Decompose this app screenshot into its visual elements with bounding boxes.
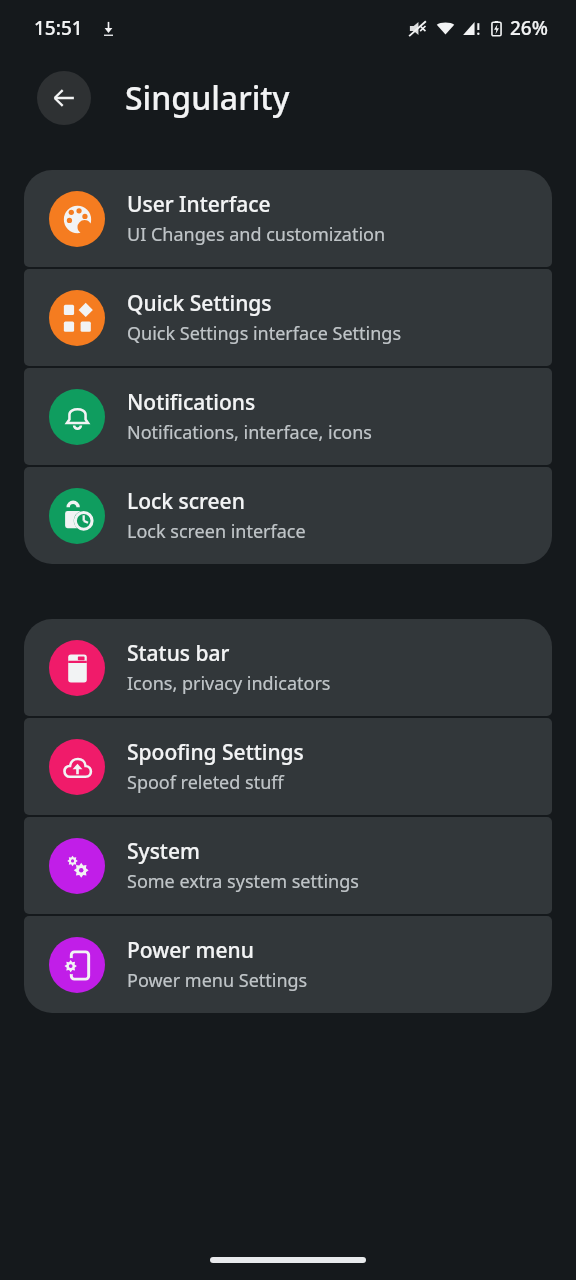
staticText: Notifications, interface, icons bbox=[127, 420, 372, 445]
staticText: Power menu bbox=[127, 936, 254, 965]
staticText: Quick Settings bbox=[127, 289, 272, 318]
button[interactable]: Lock screen bbox=[24, 467, 552, 564]
button[interactable]: Spoofing Settings bbox=[24, 718, 552, 815]
staticText: System bbox=[127, 837, 200, 866]
staticText: Singularity bbox=[125, 76, 290, 120]
staticText: Spoofing Settings bbox=[127, 738, 304, 767]
staticText: User Interface bbox=[127, 190, 271, 219]
staticText: UI Changes and customization bbox=[127, 222, 386, 247]
button[interactable]: Power menu bbox=[24, 916, 552, 1013]
button[interactable]: User Interface bbox=[24, 170, 552, 267]
staticText: Notifications bbox=[127, 388, 256, 417]
staticText: Quick Settings interface Settings bbox=[127, 321, 402, 346]
staticText: 26% bbox=[510, 15, 548, 41]
staticText: Icons, privacy indicators bbox=[127, 671, 331, 696]
staticText: Lock screen bbox=[127, 487, 245, 516]
staticText: Some extra system settings bbox=[127, 869, 359, 894]
staticText: Spoof releted stuff bbox=[127, 770, 284, 795]
staticText: 15:51 bbox=[34, 15, 83, 41]
staticText: Power menu Settings bbox=[127, 968, 308, 993]
button[interactable]: Quick Settings bbox=[24, 269, 552, 366]
staticText: Lock screen interface bbox=[127, 519, 306, 544]
button[interactable]: System bbox=[24, 817, 552, 914]
staticText: Status bar bbox=[127, 639, 230, 668]
button[interactable]: Status bar bbox=[24, 619, 552, 716]
button[interactable]: Back bbox=[37, 71, 91, 125]
button[interactable]: Notifications bbox=[24, 368, 552, 465]
